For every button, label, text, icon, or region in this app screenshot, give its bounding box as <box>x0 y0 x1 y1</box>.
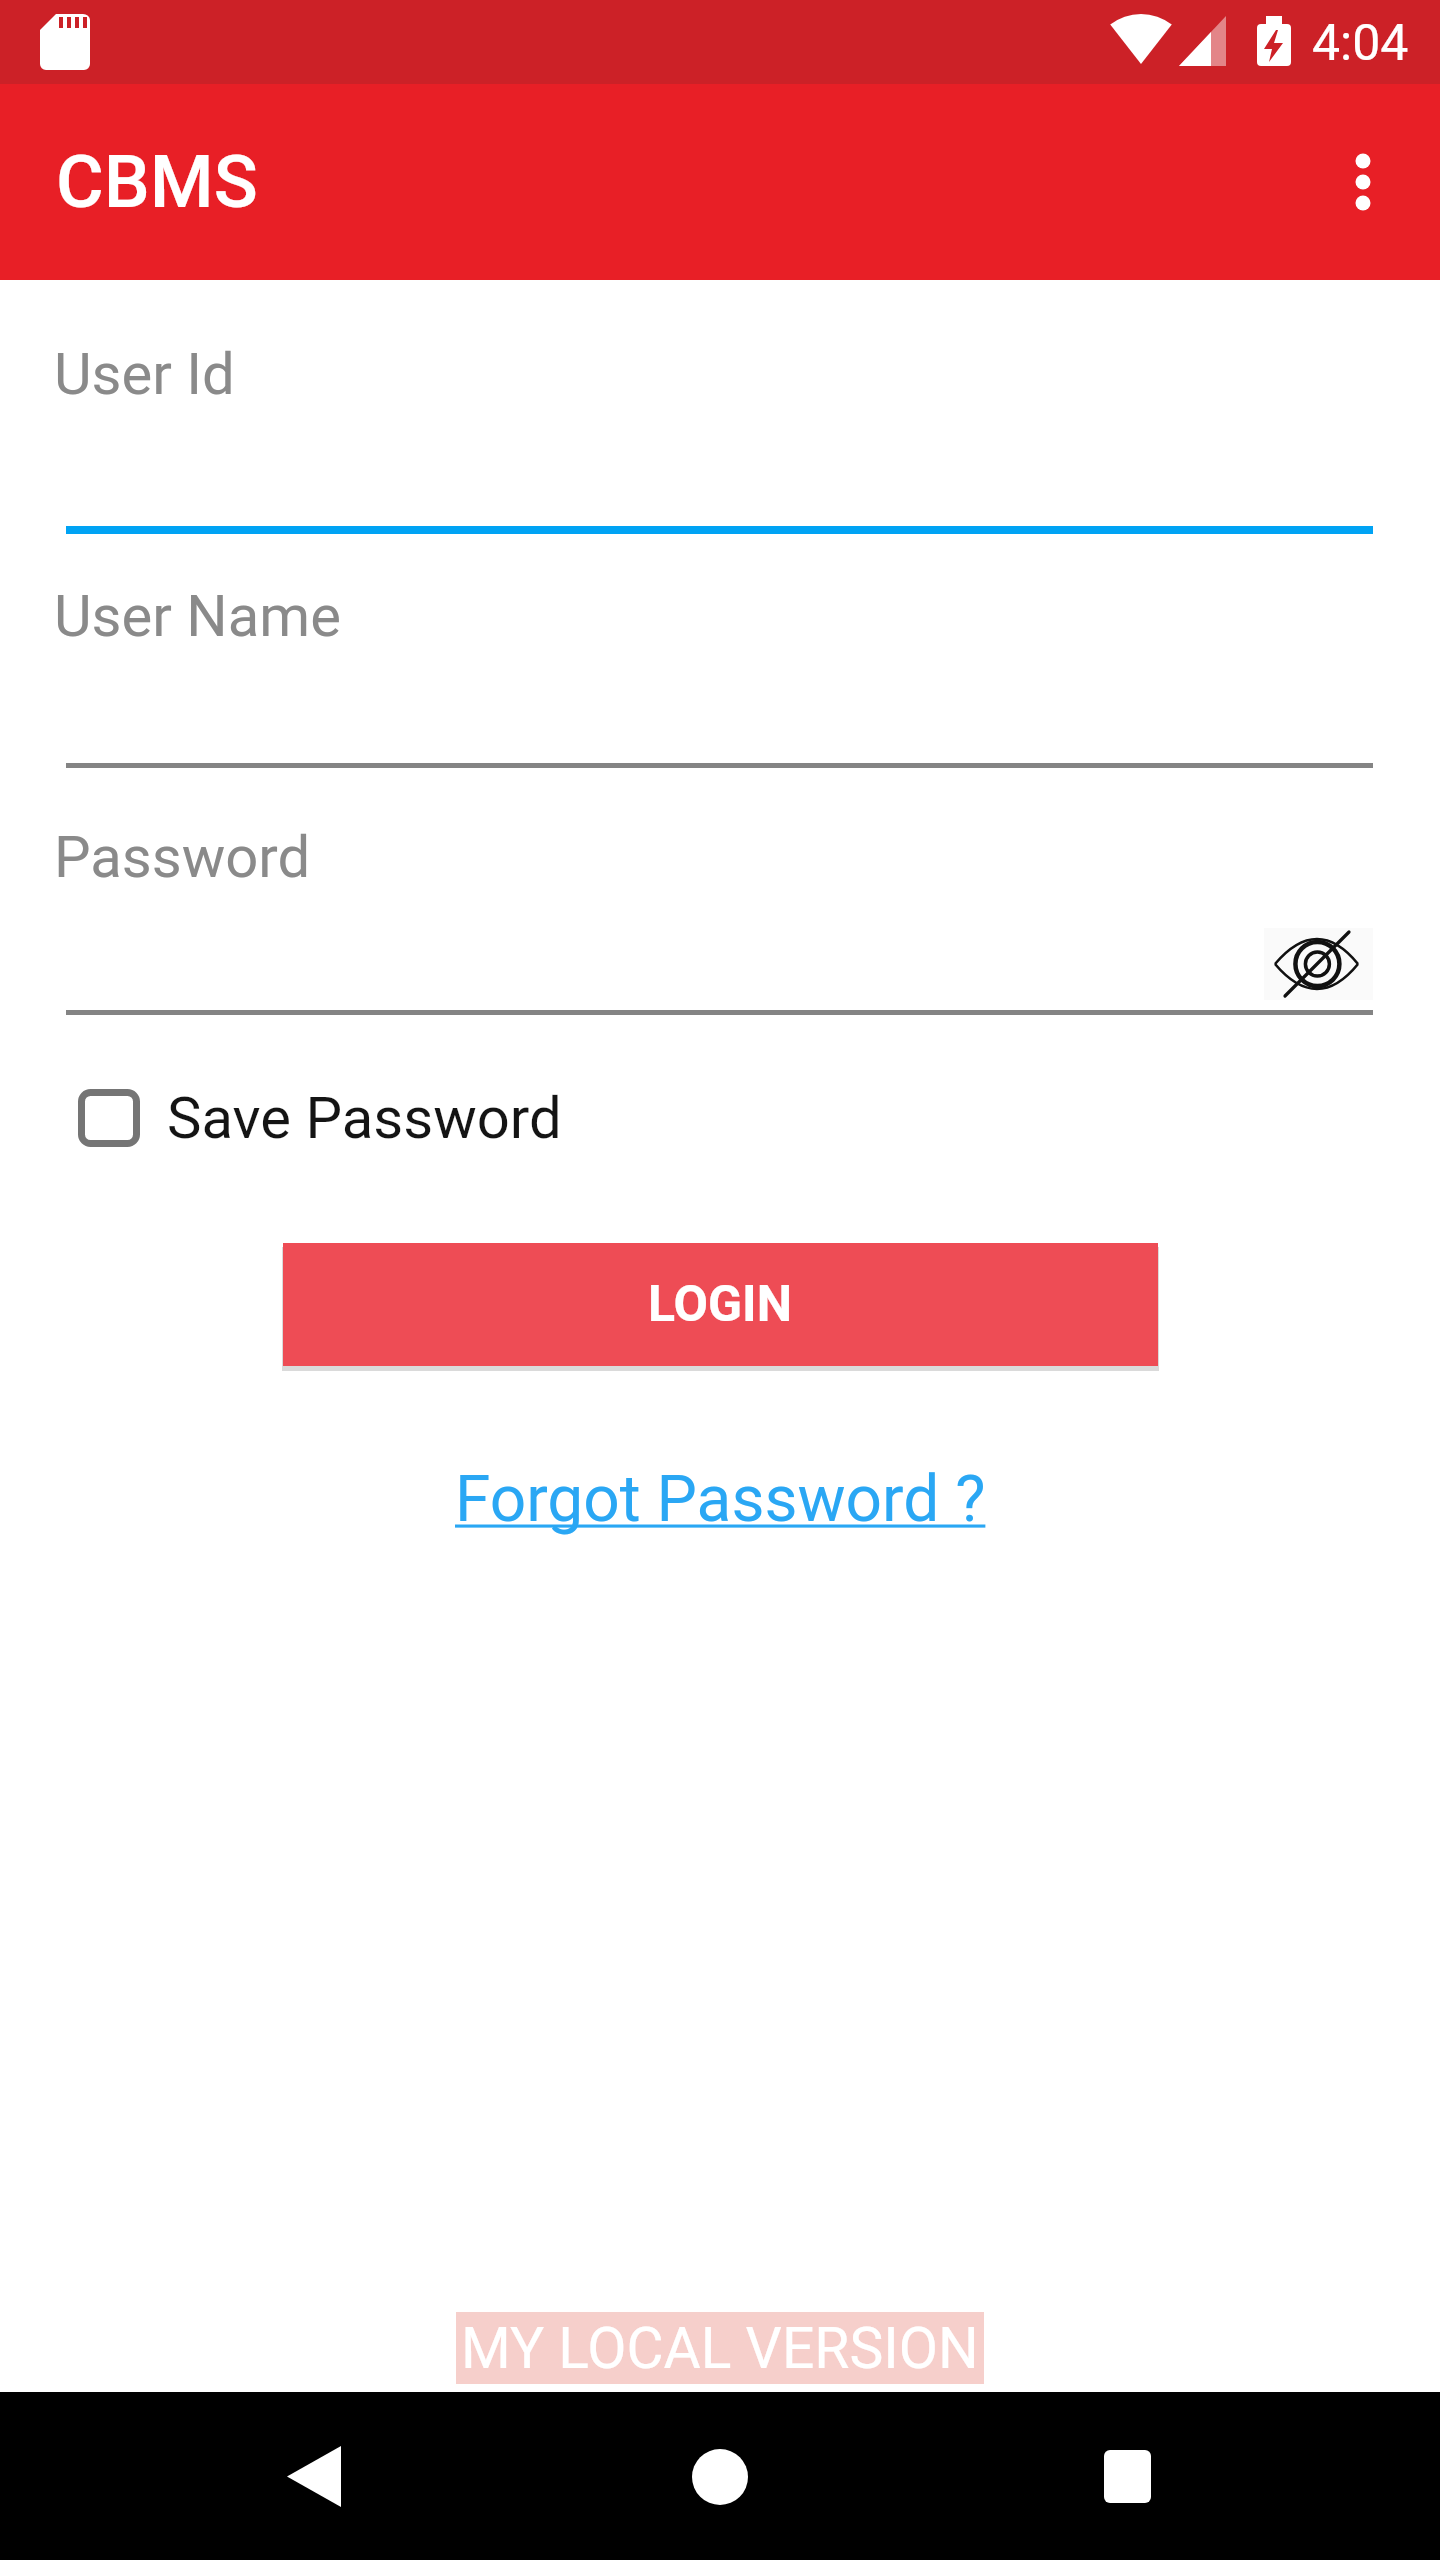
staticText: User Id <box>54 340 235 408</box>
staticText: User Name <box>54 582 341 650</box>
staticText: LOGIN <box>648 1275 793 1334</box>
button[interactable]: Save Password <box>58 1072 562 1164</box>
button[interactable] <box>287 2446 341 2507</box>
button[interactable] <box>1104 2450 1151 2503</box>
button[interactable]: LOGIN <box>283 1243 1158 1366</box>
button[interactable] <box>692 2449 748 2505</box>
button[interactable]: Forgot Password ? <box>455 1462 986 1537</box>
button[interactable] <box>1264 928 1373 1000</box>
staticText: Password <box>54 823 311 891</box>
staticText: MY LOCAL VERSION <box>461 2315 979 2382</box>
staticText: 4:04 <box>1312 14 1409 73</box>
staticText: Save Password <box>167 1084 562 1152</box>
button[interactable] <box>1344 84 1440 280</box>
staticText: CBMS <box>56 139 258 225</box>
